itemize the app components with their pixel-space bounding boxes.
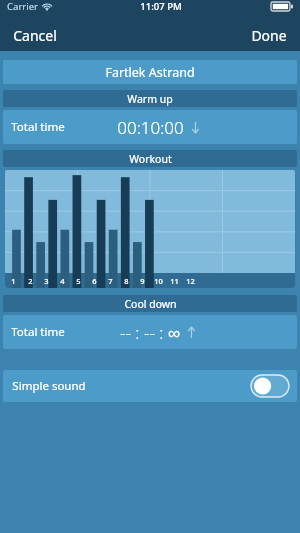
button[interactable]: Fartlek Astrand <box>3 60 297 84</box>
staticText: 2 <box>28 276 33 286</box>
other: Decrease time <box>191 121 200 134</box>
staticText: Total time <box>11 324 65 340</box>
staticText: Fartlek Astrand <box>105 64 195 81</box>
button[interactable]: Simple sound <box>3 370 297 402</box>
staticText: Total time <box>11 119 65 135</box>
staticText: 4 <box>60 276 65 286</box>
staticText: Cool down <box>124 297 177 311</box>
button[interactable]: Total time <box>3 110 297 144</box>
staticText: Simple sound <box>12 378 86 394</box>
staticText: Cancel <box>13 26 57 45</box>
staticText: 1 <box>11 276 16 286</box>
button[interactable]: Total time <box>3 315 297 349</box>
staticText: 8 <box>124 276 129 286</box>
staticText: Carrier <box>7 0 38 13</box>
staticText: 6 <box>92 276 97 286</box>
staticText: 11:07 PM <box>140 0 182 13</box>
button[interactable]: Simple sound toggle <box>251 375 289 397</box>
staticText: 9 <box>140 276 145 286</box>
button[interactable]: Cancel <box>0 21 70 50</box>
staticText: 3 <box>44 276 49 286</box>
staticText: -- : -- : ∞ <box>120 321 180 344</box>
staticText: 5 <box>76 276 81 286</box>
staticText: Warm up <box>127 92 173 106</box>
staticText: 12 <box>186 276 195 286</box>
other: Increase time <box>187 326 196 339</box>
staticText: 10 <box>154 276 163 286</box>
staticText: Workout <box>129 152 172 166</box>
staticText: 11 <box>170 276 179 286</box>
staticText: Done <box>251 26 287 45</box>
button[interactable]: Done <box>238 21 300 50</box>
staticText: 00:10:00 <box>117 116 184 139</box>
button[interactable]: 1 <box>5 170 295 288</box>
staticText: 7 <box>108 276 113 286</box>
